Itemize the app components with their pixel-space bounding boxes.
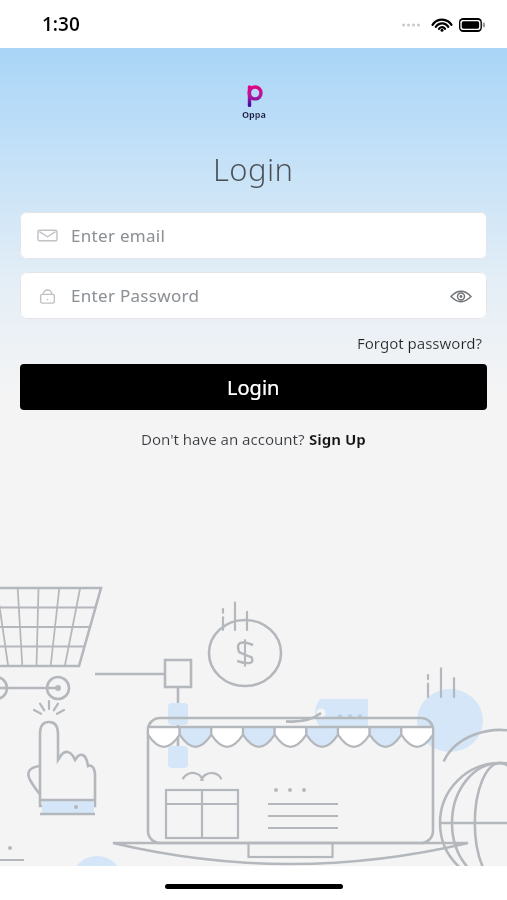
- button[interactable]: Login: [20, 364, 487, 410]
- staticText: Don't have an account?: [141, 429, 309, 449]
- staticText: Sign Up: [309, 429, 366, 449]
- button[interactable]: Enter Password: [20, 272, 487, 319]
- staticText: Forgot password?: [357, 333, 483, 353]
- staticText: Enter Password: [71, 284, 200, 307]
- button[interactable]: Forgot password?: [353, 329, 487, 357]
- staticText: Oppa: [242, 108, 266, 120]
- staticText: Enter email: [71, 224, 166, 247]
- staticText: 1:30: [42, 11, 80, 37]
- button[interactable]: Show password: [447, 282, 475, 310]
- button[interactable]: Don't have an account?: [135, 427, 372, 451]
- button[interactable]: Enter email: [20, 212, 487, 259]
- staticText: Login: [213, 148, 294, 190]
- staticText: Login: [227, 374, 280, 401]
